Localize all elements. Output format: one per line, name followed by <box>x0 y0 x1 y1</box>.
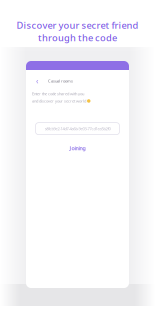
staticText: Discover your secret friend <box>16 19 138 31</box>
button[interactable]: Back <box>33 77 41 85</box>
button[interactable]: Joining <box>69 145 85 152</box>
staticText: Casual rooms <box>48 78 73 84</box>
staticText: a8fcb9e2-14d7-4a6b-9e03-77cd1ea5b2f0 <box>44 126 110 131</box>
staticText: Enter the code shared with you <box>32 91 84 96</box>
staticText: and discover your secret world <box>32 98 86 104</box>
staticText: Joining <box>69 145 85 152</box>
staticText: ‹ <box>36 76 38 86</box>
staticText: through the code <box>38 31 117 44</box>
